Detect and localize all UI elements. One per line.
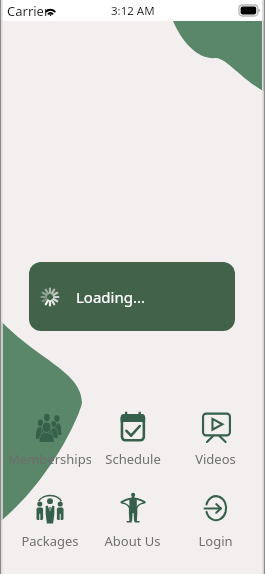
button[interactable]: Schedule xyxy=(91,409,174,468)
button[interactable]: Packages xyxy=(8,491,91,550)
other: Wifi xyxy=(44,5,57,16)
button[interactable]: Login xyxy=(174,491,257,550)
staticText: Carrier xyxy=(7,2,50,20)
staticText: Packages xyxy=(21,532,79,550)
button[interactable]: Memberships xyxy=(8,409,91,468)
staticText: Videos xyxy=(195,450,236,468)
staticText: Schedule xyxy=(105,450,161,468)
staticText: Login xyxy=(198,532,233,550)
staticText: 3:12 AM xyxy=(111,3,155,19)
staticText: Memberships xyxy=(8,450,91,468)
other: Battery xyxy=(239,5,260,16)
button[interactable]: Videos xyxy=(174,409,257,468)
staticText: Loading... xyxy=(76,287,146,307)
button[interactable]: About Us xyxy=(91,491,174,550)
button[interactable]: Loading... xyxy=(29,262,235,331)
staticText: About Us xyxy=(104,532,161,550)
